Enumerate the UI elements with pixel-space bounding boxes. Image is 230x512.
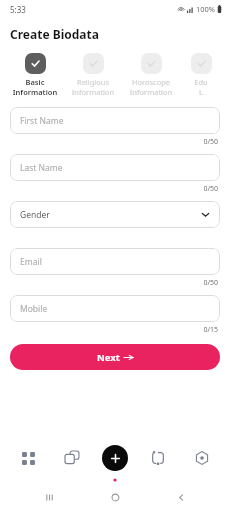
staticText: 0/50	[10, 137, 218, 147]
staticText: Religious	[70, 77, 116, 87]
staticText: 100%	[196, 4, 216, 14]
button[interactable]: Horoscope	[128, 53, 174, 97]
staticText: Information	[128, 87, 174, 97]
staticText: Basic	[12, 77, 58, 87]
staticText: Create Biodata	[10, 26, 99, 42]
button[interactable]: First Name	[10, 107, 220, 134]
button[interactable]: Dashboard	[13, 443, 43, 473]
button[interactable]: Religious	[70, 53, 116, 97]
staticText: Information	[70, 87, 116, 97]
staticText: Mobile	[20, 303, 210, 315]
button[interactable]: Next	[10, 344, 220, 370]
button[interactable]: Last Name	[10, 154, 220, 181]
staticText: L	[186, 87, 216, 97]
button[interactable]: Basic	[12, 53, 58, 97]
staticText: Edu	[186, 77, 216, 87]
staticText: Information	[12, 87, 58, 97]
button[interactable]: Collections	[57, 443, 87, 473]
staticText: First Name	[20, 115, 210, 127]
button[interactable]: Saved	[143, 443, 173, 473]
staticText: 0/50	[10, 184, 218, 194]
button[interactable]: Email	[10, 248, 220, 275]
staticText: 5:33	[10, 4, 26, 15]
button[interactable]: Mobile	[10, 295, 220, 322]
staticText: Next	[97, 351, 120, 364]
staticText: Email	[20, 256, 210, 268]
staticText: Last Name	[20, 162, 210, 174]
button[interactable]: Edu	[186, 53, 216, 97]
staticText: 0/15	[10, 325, 218, 335]
button[interactable]: Settings	[187, 443, 217, 473]
button[interactable]: Add	[100, 443, 130, 473]
staticText: Horoscope	[128, 77, 174, 87]
button[interactable]: Gender	[10, 201, 220, 228]
staticText: Gender	[20, 209, 201, 221]
button[interactable]: Home	[104, 486, 126, 508]
button[interactable]: Recents	[38, 486, 60, 508]
button[interactable]: Back	[170, 486, 192, 508]
staticText: 0/50	[10, 278, 218, 288]
